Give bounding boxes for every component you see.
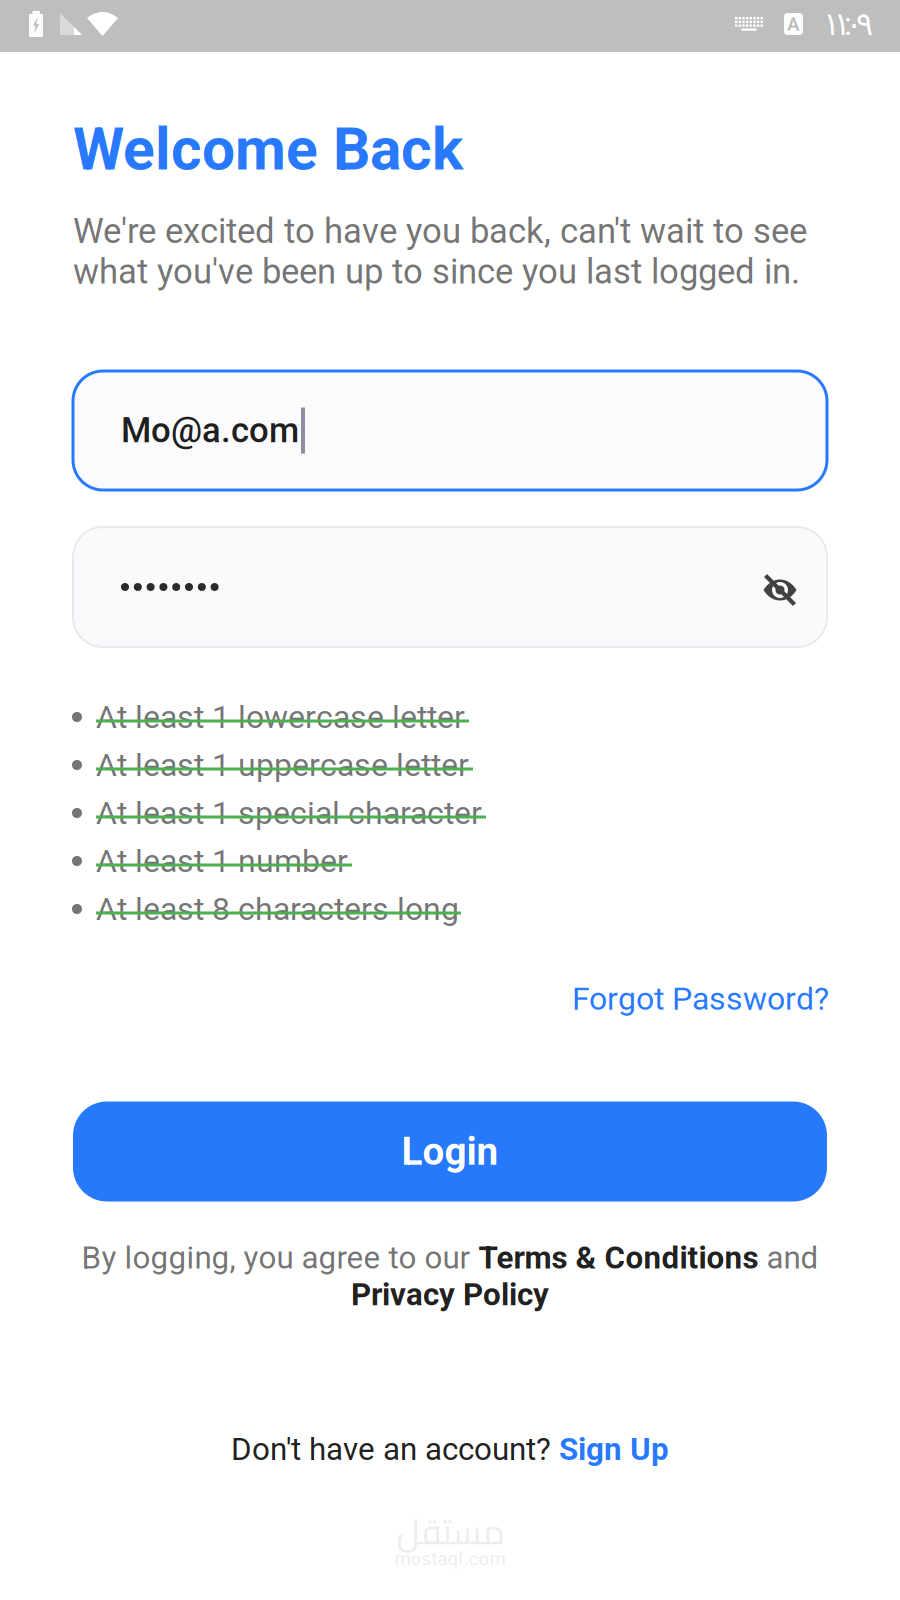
staticText: ١١:٠٩ xyxy=(823,5,873,43)
button[interactable]: Password xyxy=(73,527,827,647)
staticText: Login xyxy=(401,1129,498,1174)
staticText: By logging, you agree to our xyxy=(81,1239,478,1276)
button[interactable]: Show password xyxy=(731,561,783,613)
staticText: A xyxy=(787,13,800,35)
button[interactable]: Email address xyxy=(73,371,827,490)
staticText: Sign Up xyxy=(559,1431,669,1468)
staticText: Privacy Policy xyxy=(351,1276,549,1313)
button[interactable]: Privacy Policy xyxy=(351,1276,549,1313)
staticText: Mo@a.com xyxy=(121,410,299,451)
staticText: At least 1 special character xyxy=(96,794,482,832)
staticText: and xyxy=(758,1239,818,1276)
button[interactable]: Forgot Password? xyxy=(572,980,829,1017)
staticText: At least 8 characters long xyxy=(96,890,459,928)
staticText: At least 1 number xyxy=(96,842,348,880)
button[interactable]: Login xyxy=(73,1101,827,1201)
staticText: Don't have an account? xyxy=(231,1431,559,1468)
button[interactable]: Sign Up xyxy=(559,1431,669,1468)
staticText: Forgot Password? xyxy=(572,980,829,1017)
staticText: Welcome Back xyxy=(73,115,463,184)
staticText: mostaql.com xyxy=(394,1548,505,1570)
staticText: Terms & Conditions xyxy=(478,1239,758,1276)
staticText: At least 1 uppercase letter xyxy=(96,746,469,784)
staticText: At least 1 lowercase letter xyxy=(96,698,465,736)
staticText: مستقل xyxy=(396,1499,504,1564)
staticText: We're excited to have you back, can't wa… xyxy=(73,211,807,292)
button[interactable]: Terms & Conditions xyxy=(478,1239,758,1276)
